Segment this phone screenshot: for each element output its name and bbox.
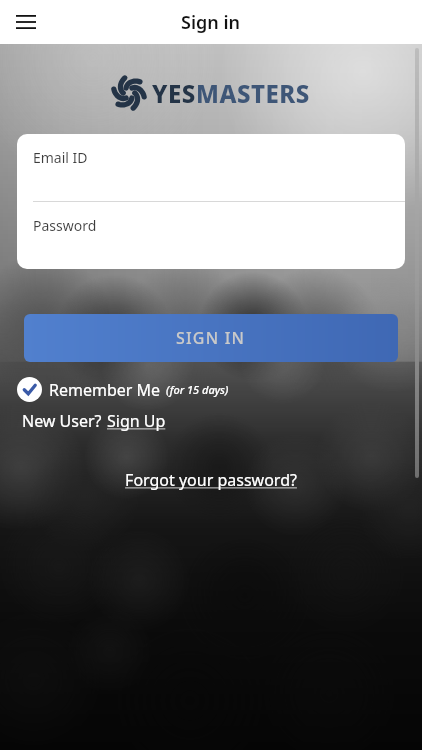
button[interactable]: Email ID — [17, 134, 405, 201]
button[interactable]: Password — [17, 202, 405, 269]
button[interactable]: Open navigation menu — [8, 4, 44, 40]
staticText: Password — [33, 216, 97, 235]
staticText: YES — [152, 77, 196, 110]
staticText: Forgot your password? — [125, 469, 297, 491]
button[interactable]: Forgot your password? — [117, 465, 305, 495]
staticText: SIGN IN — [176, 327, 246, 349]
staticText: New User? — [22, 410, 102, 432]
staticText: Email ID — [33, 148, 88, 167]
staticText: Remember Me — [49, 379, 161, 401]
staticText: (for 15 days) — [166, 382, 229, 397]
button[interactable]: Remember Me — [17, 377, 229, 402]
button[interactable]: Sign Up — [107, 410, 166, 432]
button[interactable]: SIGN IN — [24, 314, 398, 362]
staticText: MASTERS — [196, 77, 310, 110]
staticText: Sign Up — [107, 410, 166, 432]
staticText: Sign in — [181, 10, 241, 35]
